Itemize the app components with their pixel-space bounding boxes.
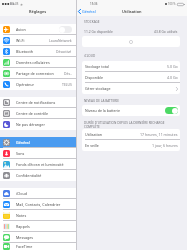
button[interactable]: Rappels bbox=[0, 221, 76, 232]
button[interactable]: Ne pas déranger bbox=[0, 119, 76, 130]
staticText: En veille bbox=[85, 143, 99, 148]
staticText: Général bbox=[16, 140, 30, 145]
staticText: FaceTime bbox=[16, 244, 33, 249]
button[interactable]: Général bbox=[0, 137, 76, 148]
button[interactable]: En veille bbox=[82, 140, 180, 151]
button[interactable]: Gérer stockage bbox=[82, 83, 180, 94]
staticText: iCLOUD bbox=[84, 54, 96, 58]
staticText: Utilisation bbox=[122, 9, 142, 14]
staticText: Partage de connexion bbox=[16, 71, 54, 76]
button[interactable]: Niveau de la batterie bbox=[82, 105, 180, 116]
staticText: DURÉE D'UTILISATION DEPUIS LA DERNIÈRE R… bbox=[84, 121, 165, 129]
staticText: STOCKAGE bbox=[84, 20, 100, 24]
button[interactable]: Bluetooth bbox=[0, 46, 76, 57]
staticText: LauraNetwork bbox=[49, 38, 72, 43]
staticText: Centre de notifications bbox=[16, 100, 56, 105]
staticText: 4.0 Go bbox=[167, 75, 178, 80]
staticText: Général bbox=[82, 9, 96, 14]
staticText: TELUS bbox=[62, 82, 72, 87]
staticText: Disponible bbox=[85, 75, 103, 80]
button[interactable]: Sons bbox=[0, 148, 76, 159]
button[interactable]: Mail, Contacts, Calendrier bbox=[0, 199, 76, 210]
button[interactable]: Notes bbox=[0, 210, 76, 221]
staticText: Dés.. bbox=[64, 71, 72, 76]
staticText: Utilisation bbox=[85, 132, 103, 137]
button[interactable]: Utilisation bbox=[82, 129, 180, 140]
staticText: Notes bbox=[16, 213, 27, 218]
staticText: Données cellulaires bbox=[16, 60, 50, 65]
staticText: Opérateur bbox=[16, 82, 34, 87]
staticText: Rappels bbox=[16, 224, 30, 229]
staticText: 43.8 Go utilisés bbox=[154, 29, 178, 33]
staticText: Fonds d'écran et luminosité bbox=[16, 162, 64, 167]
staticText: Ne pas déranger bbox=[16, 122, 45, 127]
button[interactable]: Avion bbox=[0, 24, 76, 35]
staticText: Stockage total bbox=[85, 64, 109, 69]
staticText: Bluetooth bbox=[16, 49, 34, 54]
button[interactable]: Opérateur bbox=[0, 79, 76, 90]
button[interactable]: Confidentialité bbox=[0, 170, 76, 181]
staticText: Réglages bbox=[29, 9, 47, 14]
button[interactable]: Fonds d'écran et luminosité bbox=[0, 159, 76, 170]
staticText: Gérer stockage bbox=[85, 86, 111, 91]
staticText: NIVEAU DE LA BATTERIE bbox=[84, 99, 119, 103]
button[interactable]: Disponible bbox=[82, 72, 180, 83]
staticText: 1 jour, 6 heures bbox=[152, 143, 178, 148]
button[interactable]: FaceTime bbox=[0, 243, 76, 250]
button[interactable]: Messages bbox=[0, 232, 76, 243]
staticText: Avion bbox=[16, 27, 26, 32]
button[interactable]: Stockage total bbox=[82, 61, 180, 72]
button[interactable]: Général bbox=[78, 6, 96, 16]
button[interactable]: Wi-Fi bbox=[0, 35, 76, 46]
staticText: 11.2 Go disponible bbox=[84, 29, 113, 33]
staticText: Mail, Contacts, Calendrier bbox=[16, 202, 61, 207]
button[interactable]: Centre de contrôle bbox=[0, 108, 76, 119]
staticText: Centre de contrôle bbox=[16, 111, 49, 116]
staticText: 100 % bbox=[168, 2, 176, 6]
button[interactable]: iCloud bbox=[0, 188, 76, 199]
staticText: iCloud bbox=[16, 191, 28, 196]
staticText: Messages bbox=[16, 235, 34, 240]
staticText: Wi-Fi bbox=[16, 38, 25, 43]
staticText: Sons bbox=[16, 151, 25, 156]
staticText: 17 heures, 11 minutes bbox=[140, 132, 178, 137]
button[interactable]: Centre de notifications bbox=[0, 97, 76, 108]
staticText: 5.0 Go bbox=[167, 64, 178, 69]
staticText: TELUS bbox=[10, 2, 19, 6]
staticText: 15:36 bbox=[90, 2, 98, 6]
staticText: Désactivé bbox=[56, 49, 72, 54]
button[interactable]: Données cellulaires bbox=[0, 57, 76, 68]
staticText: Confidentialité bbox=[16, 173, 42, 178]
button[interactable]: Partage de connexion bbox=[0, 68, 76, 79]
staticText: Niveau de la batterie bbox=[85, 108, 121, 113]
